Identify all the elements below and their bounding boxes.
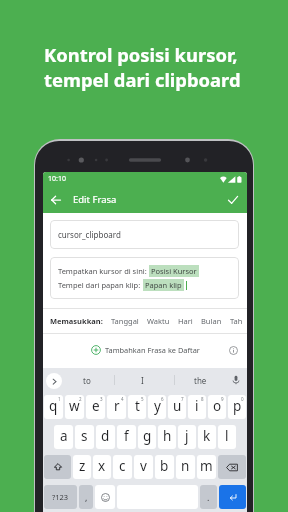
staticText: h xyxy=(163,427,172,445)
staticText: 3 xyxy=(100,396,103,402)
button[interactable]: k xyxy=(198,425,216,449)
staticText: Hari xyxy=(178,316,193,326)
button[interactable]: u xyxy=(168,395,186,419)
staticText: Tanggal xyxy=(111,316,139,326)
button[interactable]: Tambahkan Frasa ke Daftar xyxy=(91,345,200,355)
button[interactable]: the xyxy=(182,368,218,392)
staticText: i xyxy=(195,397,199,415)
button[interactable]: m xyxy=(197,455,216,479)
button[interactable]: I xyxy=(124,368,160,392)
staticText: Tempel dari papan klip: xyxy=(58,280,143,290)
button[interactable]: Tah xyxy=(230,316,243,326)
staticText: s xyxy=(81,427,88,445)
button[interactable]: Save xyxy=(223,190,243,210)
staticText: c xyxy=(119,457,126,475)
button[interactable]: , xyxy=(79,485,93,509)
staticText: d xyxy=(101,427,110,445)
staticText: ?123 xyxy=(52,492,69,502)
staticText: Tempatkan kursor di sini: xyxy=(58,266,149,276)
button[interactable]: f xyxy=(117,425,136,449)
staticText: x xyxy=(98,457,106,475)
staticText: r xyxy=(114,397,120,415)
staticText: the xyxy=(194,375,207,386)
staticText: Tambahkan Frasa ke Daftar xyxy=(105,345,200,355)
staticText: y xyxy=(154,397,161,415)
staticText: n xyxy=(181,457,190,475)
staticText: 8 xyxy=(201,396,204,402)
staticText: Kontrol posisi kursor, tempel dari clipb… xyxy=(44,42,241,92)
button[interactable]: Emoji xyxy=(95,485,115,509)
button[interactable]: to xyxy=(69,368,105,392)
staticText: f xyxy=(124,427,129,445)
button[interactable]: l xyxy=(218,425,236,449)
button[interactable]: g xyxy=(138,425,156,449)
staticText: a xyxy=(60,427,68,445)
staticText: 10:10 xyxy=(48,174,66,184)
button[interactable]: o xyxy=(208,395,226,419)
button[interactable]: b xyxy=(155,455,174,479)
staticText: Waktu xyxy=(147,316,170,326)
staticText: o xyxy=(213,397,222,415)
staticText: cursor_clipboard xyxy=(58,229,121,240)
staticText: t xyxy=(135,397,140,415)
button[interactable]: . xyxy=(200,485,217,509)
button[interactable]: Tanggal xyxy=(111,316,139,326)
button[interactable]: t xyxy=(128,395,146,419)
button[interactable]: s xyxy=(75,425,94,449)
button[interactable]: v xyxy=(134,455,153,479)
staticText: p xyxy=(233,397,242,415)
staticText: Edit Frasa xyxy=(73,193,117,206)
staticText: 7 xyxy=(181,396,184,402)
staticText: j xyxy=(185,427,189,445)
button[interactable]: n xyxy=(176,455,195,479)
button[interactable]: w xyxy=(65,395,84,419)
button[interactable]: x xyxy=(93,455,111,479)
staticText: u xyxy=(173,397,182,415)
button[interactable]: Back xyxy=(46,190,66,210)
staticText: m xyxy=(200,457,213,475)
button[interactable]: Bulan xyxy=(201,316,222,326)
staticText: 2 xyxy=(79,396,82,402)
staticText: w xyxy=(69,397,80,415)
staticText: Bulan xyxy=(201,316,222,326)
button[interactable]: Info xyxy=(226,343,240,357)
button[interactable]: Voice input xyxy=(226,368,244,392)
button[interactable]: a xyxy=(54,425,73,449)
staticText: 6 xyxy=(161,396,164,402)
button[interactable]: Enter xyxy=(219,485,246,509)
staticText: 5 xyxy=(141,396,144,402)
button[interactable]: d xyxy=(96,425,115,449)
staticText: I xyxy=(141,375,144,386)
button[interactable]: i xyxy=(188,395,206,419)
button[interactable]: ?123 xyxy=(44,485,77,509)
button[interactable]: j xyxy=(178,425,196,449)
staticText: q xyxy=(49,397,58,415)
button[interactable]: h xyxy=(158,425,176,449)
button[interactable]: y xyxy=(148,395,166,419)
button[interactable]: Hari xyxy=(178,316,193,326)
button[interactable]: Backspace xyxy=(218,455,246,479)
staticText: Posisi Kursor xyxy=(151,266,197,276)
button[interactable]: z xyxy=(73,455,91,479)
staticText: 9 xyxy=(221,396,224,402)
staticText: z xyxy=(79,457,86,475)
staticText: v xyxy=(140,457,147,475)
button[interactable]: Waktu xyxy=(147,316,170,326)
staticText: 0 xyxy=(241,396,244,402)
button[interactable]: Shift xyxy=(44,455,71,479)
staticText: l xyxy=(225,427,229,445)
staticText: 1 xyxy=(58,396,61,402)
button[interactable]: r xyxy=(107,395,126,419)
staticText: Memasukkan: xyxy=(50,316,103,326)
staticText: e xyxy=(92,397,100,415)
button[interactable]: Expand suggestions xyxy=(46,373,62,389)
staticText: k xyxy=(203,427,211,445)
button[interactable]: q xyxy=(44,395,63,419)
staticText: g xyxy=(143,427,152,445)
staticText: . xyxy=(207,491,210,503)
button[interactable]: c xyxy=(113,455,132,479)
staticText: 4 xyxy=(121,396,124,402)
button[interactable]: p xyxy=(228,395,246,419)
button[interactable]: e xyxy=(86,395,105,419)
